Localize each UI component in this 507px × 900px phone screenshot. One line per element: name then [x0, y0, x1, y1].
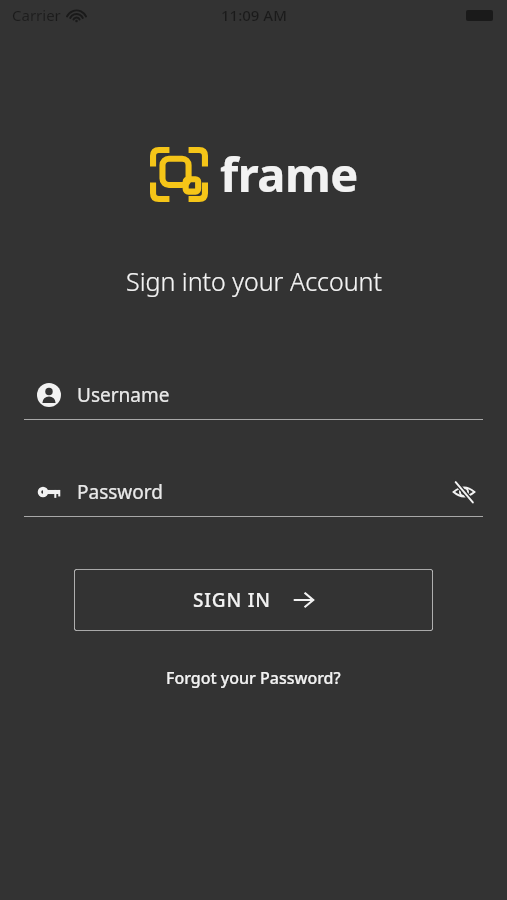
staticText: SIGN IN	[193, 587, 271, 613]
button[interactable]: Show password	[445, 473, 483, 511]
staticText: frame	[220, 142, 358, 206]
button[interactable]: Person	[24, 372, 483, 420]
staticText: Carrier	[12, 5, 61, 25]
button[interactable]: SIGN IN	[74, 569, 433, 631]
staticText: Username	[77, 382, 170, 408]
staticText: Forgot your Password?	[166, 667, 341, 689]
staticText: 11:09 AM	[221, 5, 287, 25]
staticText: Password	[77, 479, 163, 505]
other: Person	[37, 383, 61, 407]
staticText: Sign into your Account	[126, 264, 382, 298]
button[interactable]: Key	[24, 469, 483, 517]
other: Key	[37, 480, 61, 504]
button[interactable]: Forgot your Password?	[158, 663, 349, 693]
